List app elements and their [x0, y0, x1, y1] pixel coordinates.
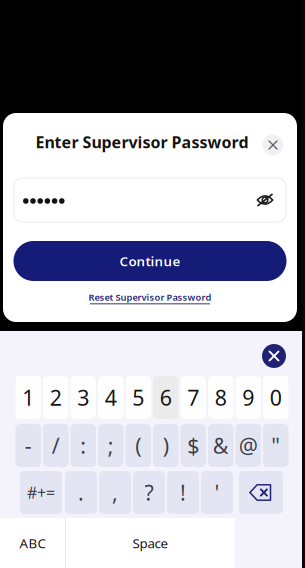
staticText: ) [163, 431, 169, 460]
staticText: Enter Supervisor Password [35, 131, 248, 153]
button[interactable]: Close [261, 133, 285, 157]
staticText: & [213, 431, 229, 460]
button[interactable]: Delete [239, 471, 283, 514]
button[interactable]: Dismiss keyboard [260, 342, 288, 370]
staticText: - [25, 431, 32, 460]
staticText: @ [239, 431, 258, 460]
button[interactable]: ? [133, 471, 165, 514]
staticText: 9 [242, 383, 254, 412]
button[interactable]: 5 [125, 376, 151, 419]
button[interactable]: 4 [98, 376, 123, 419]
staticText: . [78, 478, 84, 507]
button[interactable]: @ [235, 424, 261, 467]
staticText: $ [187, 431, 199, 460]
button[interactable]: ABC [0, 518, 65, 568]
staticText: ( [135, 431, 141, 460]
button[interactable]: , [99, 471, 131, 514]
button[interactable]: 1 [15, 376, 41, 419]
staticText: Continue [119, 252, 180, 270]
staticText: 0 [270, 383, 282, 412]
button[interactable]: ) [153, 424, 178, 467]
button[interactable]: : [70, 424, 96, 467]
button[interactable]: 2 [43, 376, 68, 419]
button[interactable]: . [65, 471, 97, 514]
staticText: / [52, 431, 60, 460]
button[interactable]: Show password [256, 193, 274, 207]
staticText: 6 [160, 383, 172, 412]
staticText: ABC [19, 534, 45, 552]
staticText: 1 [22, 383, 34, 412]
button[interactable]: 3 [70, 376, 96, 419]
button[interactable]: ! [167, 471, 199, 514]
staticText: 7 [187, 383, 199, 412]
button[interactable]: 0 [263, 376, 288, 419]
button[interactable]: Reset Supervisor Password [82, 281, 217, 308]
button[interactable]: 9 [235, 376, 261, 419]
button[interactable]: ' [201, 471, 233, 514]
staticText: 4 [105, 383, 117, 412]
button[interactable]: ; [98, 424, 123, 467]
staticText: , [112, 478, 118, 507]
button[interactable]: / [43, 424, 68, 467]
staticText: ! [180, 478, 186, 507]
staticText: 5 [132, 383, 144, 412]
staticText: ; [108, 431, 114, 460]
button[interactable]: - [15, 424, 41, 467]
button[interactable]: $ [180, 424, 206, 467]
staticText: ? [144, 478, 153, 507]
button[interactable]: 7 [180, 376, 206, 419]
button[interactable]: 8 [208, 376, 233, 419]
staticText: 2 [50, 383, 62, 412]
staticText: Reset Supervisor Password [88, 291, 211, 303]
button[interactable]: #+= [20, 471, 62, 514]
button[interactable]: 6 [153, 376, 178, 419]
staticText: Space [132, 534, 168, 552]
button[interactable]: Space [66, 518, 235, 568]
button[interactable]: & [208, 424, 233, 467]
staticText: ' [214, 478, 219, 507]
button[interactable]: " [263, 424, 288, 467]
staticText: 8 [215, 383, 227, 412]
staticText: #+= [27, 482, 55, 503]
staticText: : [80, 431, 86, 460]
staticText: 3 [77, 383, 89, 412]
button[interactable]: Continue [13, 241, 286, 281]
staticText: " [271, 431, 280, 460]
button[interactable]: ( [125, 424, 151, 467]
